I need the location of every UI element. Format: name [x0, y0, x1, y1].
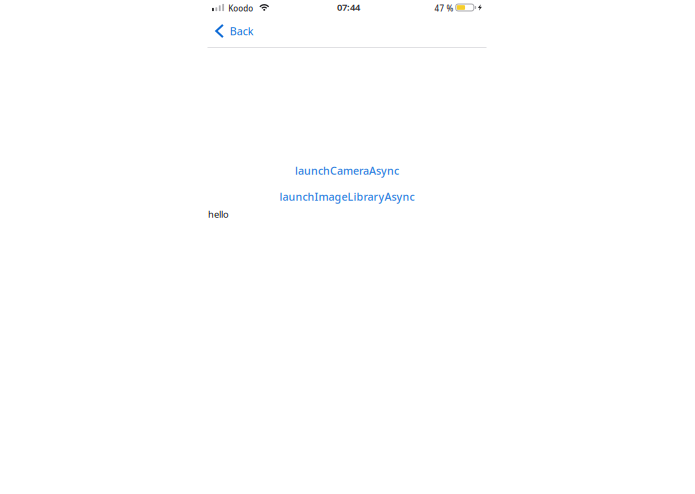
staticText: hello — [208, 208, 229, 220]
button[interactable]: launchImageLibraryAsync — [208, 188, 486, 205]
staticText: launchCameraAsync — [295, 163, 399, 178]
staticText: 47 % — [434, 3, 453, 14]
staticText: 07:44 — [337, 1, 360, 13]
button[interactable]: launchCameraAsync — [208, 162, 486, 179]
staticText: Koodo — [228, 3, 253, 14]
staticText: launchImageLibraryAsync — [279, 189, 414, 204]
button[interactable]: Back — [208, 15, 264, 46]
staticText: Back — [230, 24, 254, 38]
